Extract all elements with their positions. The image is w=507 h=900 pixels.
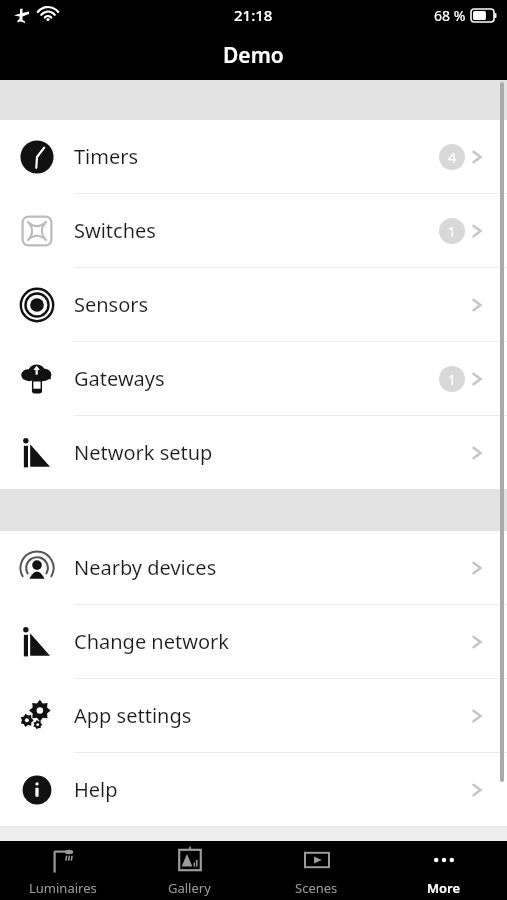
staticText: 1 (448, 222, 457, 241)
button[interactable]: Luminaires (0, 841, 126, 900)
staticText: Sensors (74, 291, 469, 318)
staticText: Change network (74, 628, 469, 655)
staticText: App settings (74, 702, 469, 729)
staticText: Gallery (168, 879, 211, 897)
button[interactable]: Gateways (0, 342, 507, 415)
staticText: Scenes (295, 879, 338, 897)
button[interactable]: Sensors (0, 268, 507, 341)
staticText: 21:18 (234, 5, 273, 25)
staticText: Help (74, 776, 469, 803)
staticText: 1 (448, 370, 457, 389)
staticText: Demo (223, 41, 284, 70)
staticText: Nearby devices (74, 554, 469, 581)
button[interactable]: Nearby devices (0, 531, 507, 604)
button[interactable]: More (380, 841, 507, 900)
staticText: Timers (74, 143, 439, 170)
button[interactable]: Network setup (0, 416, 507, 489)
button[interactable]: Scenes (253, 841, 380, 900)
button[interactable]: Timers (0, 120, 507, 193)
button[interactable]: Gallery (126, 841, 253, 900)
staticText: Gateways (74, 365, 439, 392)
staticText: Luminaires (29, 879, 97, 897)
staticText: Network setup (74, 439, 469, 466)
button[interactable]: Help (0, 753, 507, 826)
button[interactable]: App settings (0, 679, 507, 752)
button[interactable]: Switches (0, 194, 507, 267)
button[interactable]: Change network (0, 605, 507, 678)
staticText: 68 % (434, 6, 466, 25)
staticText: More (427, 879, 461, 897)
staticText: Switches (74, 217, 439, 244)
staticText: 4 (448, 148, 457, 167)
